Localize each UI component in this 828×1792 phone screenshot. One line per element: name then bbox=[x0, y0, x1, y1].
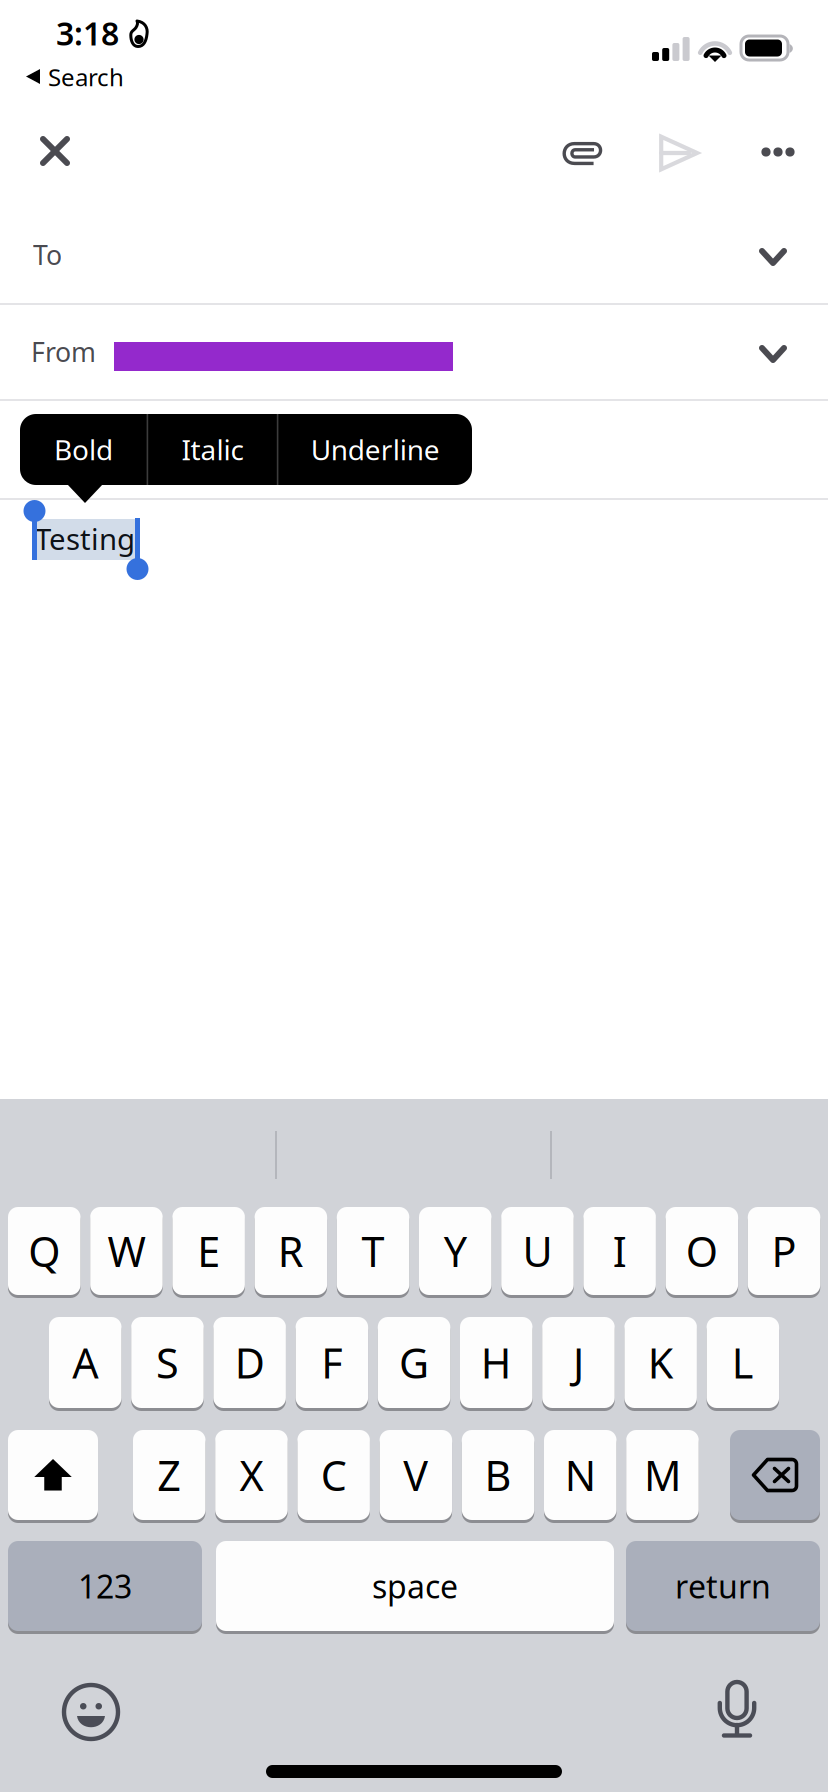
button[interactable]: K bbox=[624, 1317, 697, 1411]
staticText: K bbox=[648, 1335, 674, 1390]
staticText: W bbox=[107, 1224, 145, 1278]
staticText: From bbox=[31, 334, 96, 369]
button[interactable]: J bbox=[542, 1317, 615, 1411]
staticText: return bbox=[675, 1565, 771, 1607]
button[interactable]: V bbox=[380, 1430, 452, 1523]
staticText: 3:18 bbox=[56, 12, 119, 54]
button[interactable]: I bbox=[583, 1207, 656, 1298]
staticText: I bbox=[613, 1224, 627, 1278]
button[interactable]: C bbox=[297, 1430, 370, 1523]
staticText: V bbox=[403, 1448, 428, 1502]
button[interactable]: Y bbox=[419, 1207, 491, 1298]
button[interactable]: Close bbox=[12, 108, 98, 194]
staticText: D bbox=[235, 1335, 265, 1390]
staticText: S bbox=[156, 1335, 179, 1390]
staticText: Underline bbox=[311, 431, 440, 468]
button[interactable]: G bbox=[378, 1317, 450, 1411]
button[interactable]: space bbox=[216, 1541, 614, 1634]
staticText: Q bbox=[28, 1224, 60, 1278]
button[interactable]: Z bbox=[133, 1430, 205, 1523]
staticText: E bbox=[197, 1224, 220, 1278]
button[interactable]: Underline bbox=[278, 414, 472, 485]
staticText: U bbox=[522, 1224, 552, 1278]
button[interactable]: H bbox=[460, 1317, 532, 1411]
button[interactable]: F bbox=[296, 1317, 368, 1411]
button[interactable]: O bbox=[666, 1207, 738, 1298]
button[interactable]: Dictate bbox=[718, 1682, 756, 1740]
staticText: To bbox=[33, 237, 62, 272]
button[interactable]: X bbox=[215, 1430, 288, 1523]
staticText: M bbox=[644, 1448, 681, 1502]
staticText: Bold bbox=[54, 431, 113, 468]
button[interactable]: Send bbox=[635, 110, 721, 196]
button[interactable]: M bbox=[626, 1430, 699, 1523]
staticText: R bbox=[278, 1224, 304, 1278]
button[interactable]: R bbox=[255, 1207, 327, 1298]
button[interactable]: P bbox=[748, 1207, 820, 1298]
staticText: A bbox=[72, 1335, 98, 1390]
staticText: Italic bbox=[181, 431, 243, 468]
button[interactable]: A bbox=[49, 1317, 121, 1411]
staticText: P bbox=[772, 1224, 797, 1278]
button[interactable]: Bold bbox=[20, 414, 147, 485]
staticText: Z bbox=[157, 1448, 181, 1502]
staticText: F bbox=[321, 1335, 342, 1390]
button[interactable]: D bbox=[213, 1317, 286, 1411]
staticText: Y bbox=[444, 1224, 467, 1278]
button[interactable]: Attach bbox=[542, 110, 628, 196]
staticText: T bbox=[362, 1224, 385, 1278]
staticText: space bbox=[372, 1565, 458, 1607]
button[interactable]: T bbox=[337, 1207, 409, 1298]
staticText: C bbox=[321, 1448, 347, 1502]
button[interactable]: S bbox=[131, 1317, 204, 1411]
button[interactable]: Emoji bbox=[64, 1685, 118, 1739]
button[interactable]: N bbox=[544, 1430, 616, 1523]
button[interactable]: return bbox=[626, 1541, 820, 1634]
button[interactable]: B bbox=[462, 1430, 534, 1523]
button[interactable]: Italic bbox=[148, 414, 277, 485]
staticText: B bbox=[485, 1448, 512, 1502]
button[interactable]: To bbox=[0, 208, 828, 303]
staticText: L bbox=[732, 1335, 754, 1390]
button[interactable]: Delete bbox=[730, 1430, 820, 1523]
button[interactable]: W bbox=[90, 1207, 163, 1298]
staticText: 123 bbox=[78, 1565, 132, 1607]
button[interactable]: Search bbox=[0, 56, 260, 100]
button[interactable]: More options bbox=[735, 109, 821, 195]
staticText: H bbox=[481, 1335, 512, 1390]
button[interactable]: 123 bbox=[8, 1541, 202, 1634]
button[interactable]: U bbox=[501, 1207, 574, 1298]
staticText: G bbox=[399, 1335, 429, 1390]
button[interactable]: Shift bbox=[8, 1430, 98, 1523]
button[interactable]: From bbox=[0, 305, 828, 401]
button[interactable]: Q bbox=[8, 1207, 80, 1298]
button[interactable]: E bbox=[172, 1207, 245, 1298]
staticText: X bbox=[239, 1448, 263, 1502]
staticText: J bbox=[573, 1335, 584, 1390]
staticText: Testing bbox=[35, 519, 135, 558]
button[interactable]: L bbox=[707, 1317, 779, 1411]
staticText: O bbox=[686, 1224, 718, 1278]
staticText: N bbox=[565, 1448, 596, 1502]
staticText: Search bbox=[48, 61, 124, 93]
